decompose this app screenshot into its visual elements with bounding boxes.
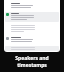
button[interactable] xyxy=(5,46,59,51)
button[interactable] xyxy=(5,24,59,34)
button[interactable] xyxy=(5,12,59,22)
button[interactable] xyxy=(5,2,59,10)
button[interactable]: Transcript screenshot xyxy=(4,0,60,52)
button[interactable] xyxy=(5,36,59,44)
staticText: Speakers and timestamps xyxy=(15,55,49,68)
